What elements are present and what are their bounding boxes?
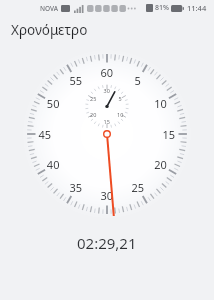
button[interactable]: Stopwatch dial, 02:29,21	[22, 49, 192, 219]
staticText: 11:44	[187, 3, 207, 13]
staticText: NOVA	[40, 4, 59, 13]
staticText: 81%	[155, 3, 169, 13]
staticText: Χρονόμετρο	[11, 21, 88, 39]
staticText: 02:29,21	[77, 233, 137, 253]
